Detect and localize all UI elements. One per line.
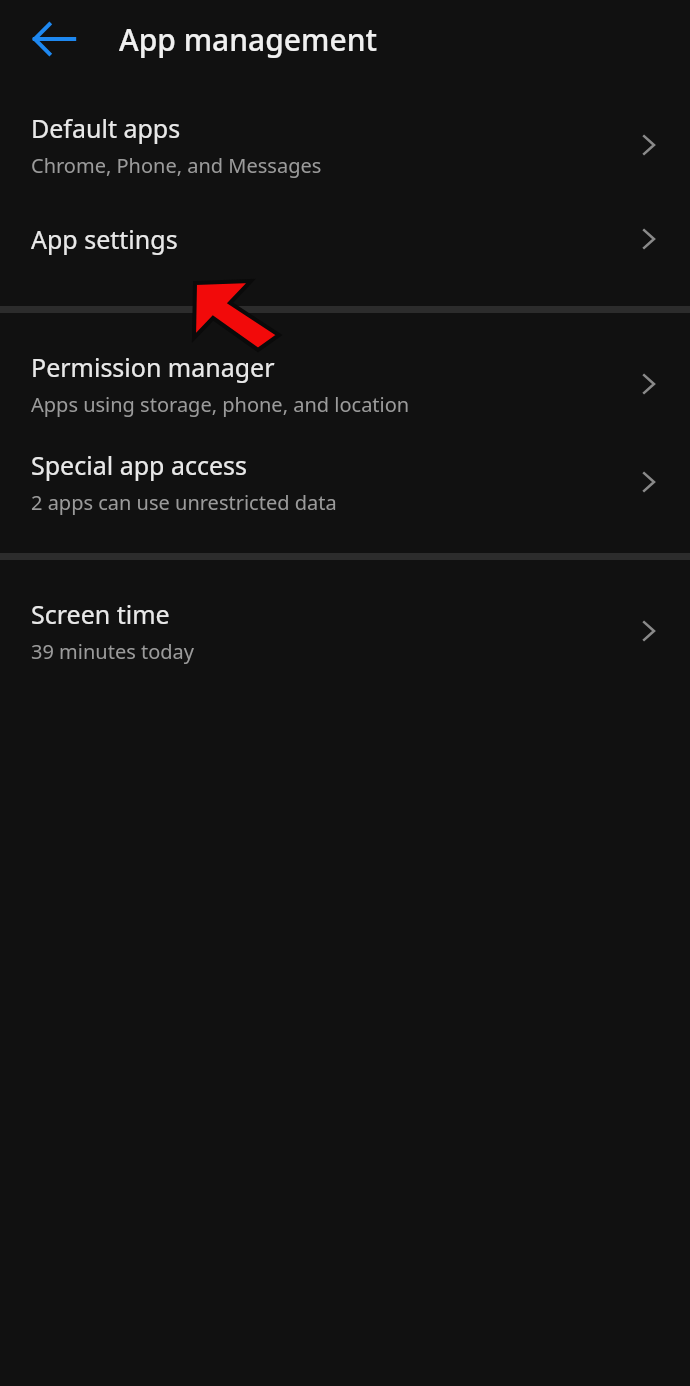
staticText: Default apps [31, 111, 181, 145]
other: Permission manager [628, 369, 668, 399]
button[interactable]: Special app access [0, 433, 690, 531]
button[interactable]: Screen time [0, 582, 690, 680]
other: Screen time [628, 616, 668, 646]
staticText: Screen time [31, 597, 170, 631]
staticText: App settings [31, 222, 178, 256]
staticText: Chrome, Phone, and Messages [31, 152, 322, 179]
button[interactable]: Permission manager [0, 335, 690, 433]
staticText: 2 apps can use unrestricted data [31, 489, 337, 516]
staticText: App management [119, 19, 377, 60]
other: App settings [628, 224, 668, 254]
button[interactable]: App settings [0, 194, 690, 284]
button[interactable]: Back [31, 16, 77, 62]
staticText: Apps using storage, phone, and location [31, 391, 410, 418]
staticText: 39 minutes today [31, 638, 194, 665]
staticText: Special app access [31, 448, 247, 482]
other: Special app access [628, 467, 668, 497]
button[interactable]: Default apps [0, 96, 690, 194]
staticText: Permission manager [31, 350, 275, 384]
other: Default apps [628, 130, 668, 160]
